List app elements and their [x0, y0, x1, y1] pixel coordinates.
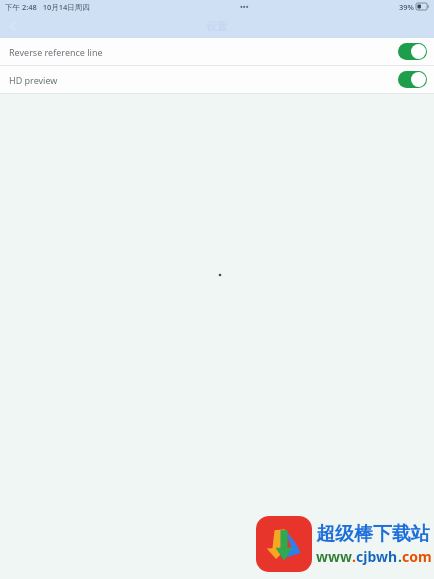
staticText: 39% — [399, 2, 414, 12]
button[interactable]: Toggle on — [398, 43, 427, 60]
button[interactable]: App logo — [256, 516, 312, 572]
staticText: com — [402, 547, 432, 566]
button[interactable]: HD preview — [0, 66, 434, 93]
staticText: 下午 2:48 10月14日周四 — [5, 2, 90, 12]
button[interactable]: Reverse reference line — [0, 38, 434, 65]
staticText: . — [398, 547, 402, 566]
staticText: 超级棒下载站 — [316, 522, 430, 546]
staticText: . — [352, 547, 356, 566]
staticText: HD preview — [9, 74, 58, 86]
staticText: Reverse reference line — [9, 46, 103, 58]
staticText: www — [316, 547, 352, 566]
staticText: ••• — [240, 2, 249, 12]
button[interactable]: Toggle on — [398, 71, 427, 88]
staticText: cjbwh — [356, 547, 398, 566]
staticText: 设置 — [206, 19, 228, 33]
